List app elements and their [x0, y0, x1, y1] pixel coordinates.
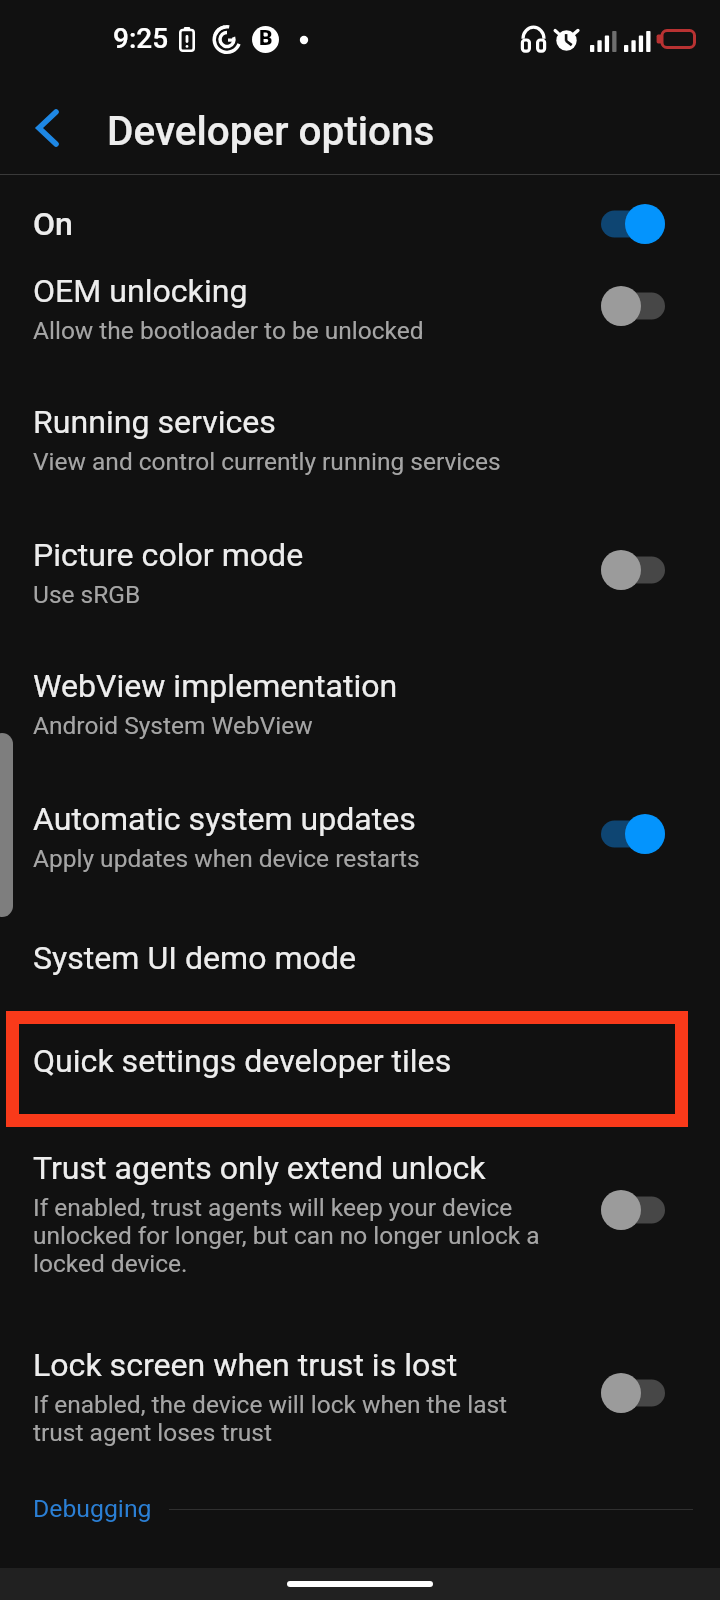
button[interactable]: System UI demo mode	[0, 939, 720, 977]
staticText: Use sRGB	[33, 580, 548, 609]
staticText: Running services	[33, 403, 276, 441]
staticText: WebView implementation	[33, 667, 398, 705]
staticText: 9:25	[113, 22, 169, 55]
button[interactable]: Automatic system updates	[0, 800, 720, 873]
button[interactable]: OEM unlocking	[0, 272, 720, 345]
staticText: Debugging	[33, 1494, 152, 1523]
staticText: Automatic system updates	[33, 800, 416, 838]
staticText: If enabled, trust agents will keep your …	[33, 1193, 548, 1278]
staticText: Android System WebView	[33, 711, 548, 740]
button[interactable]: Lock screen when trust is lost	[0, 1346, 720, 1447]
staticText: Lock screen when trust is lost	[33, 1346, 458, 1384]
button[interactable]: Running services	[0, 403, 720, 476]
staticText: View and control currently running servi…	[33, 447, 548, 476]
button[interactable]: On	[0, 196, 720, 252]
button[interactable]: WebView implementation	[0, 667, 720, 740]
staticText: Trust agents only extend unlock	[33, 1149, 486, 1187]
button[interactable]: Back	[15, 95, 81, 161]
button[interactable]: Switch on	[589, 806, 677, 862]
staticText: On	[33, 205, 73, 243]
staticText: Developer options	[107, 107, 435, 154]
button[interactable]: Switch off	[589, 1182, 677, 1238]
button[interactable]: Picture color mode	[0, 536, 720, 609]
staticText: Picture color mode	[33, 536, 304, 574]
staticText: Quick settings developer tiles	[33, 1042, 452, 1080]
button[interactable]: Switch off	[589, 278, 677, 334]
staticText: B	[259, 26, 273, 51]
button[interactable]: Switch off	[589, 542, 677, 598]
button[interactable]: Trust agents only extend unlock	[0, 1149, 720, 1278]
staticText: Apply updates when device restarts	[33, 844, 548, 873]
staticText: If enabled, the device will lock when th…	[33, 1390, 548, 1447]
button[interactable]: Switch off	[589, 1365, 677, 1421]
button[interactable]: Switch on	[589, 196, 677, 252]
staticText: System UI demo mode	[33, 939, 357, 977]
staticText: Allow the bootloader to be unlocked	[33, 316, 548, 345]
staticText: OEM unlocking	[33, 272, 248, 310]
button[interactable]: Quick settings developer tiles	[6, 1011, 688, 1127]
